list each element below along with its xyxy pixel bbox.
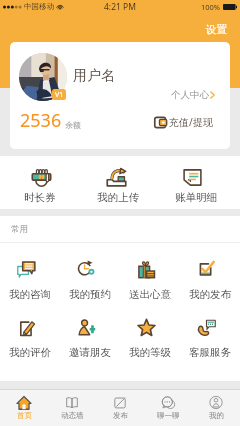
button[interactable]: 我的发布 <box>180 243 240 301</box>
staticText: 我的上传 <box>97 191 139 204</box>
button[interactable]: 设置 <box>204 21 229 38</box>
staticText: 时长券 <box>24 191 56 204</box>
button[interactable]: 充值/提现 <box>152 112 215 132</box>
staticText: 用户名 <box>73 67 115 85</box>
button[interactable]: 账单明细 <box>160 156 240 209</box>
staticText: 4:21 PM <box>104 1 136 13</box>
button[interactable]: 时长券 <box>0 156 80 209</box>
staticText: 送出心意 <box>129 288 171 301</box>
staticText: 聊一聊 <box>157 411 180 420</box>
button[interactable]: 我的咨询 <box>0 243 60 301</box>
staticText: 我的等级 <box>129 346 171 359</box>
staticText: 邀请朋友 <box>69 346 111 359</box>
staticText: 客服服务 <box>189 346 231 359</box>
staticText: 个人中心 <box>171 89 209 101</box>
button[interactable]: 我的上传 <box>80 156 160 209</box>
button[interactable]: 客服服务 <box>180 301 240 381</box>
button[interactable]: 送出心意 <box>120 243 180 301</box>
staticText: 账单明细 <box>175 191 217 204</box>
button[interactable]: 邀请朋友 <box>60 301 120 381</box>
staticText: 设置 <box>206 23 227 36</box>
button[interactable]: 首页 <box>0 390 48 426</box>
staticText: 首页 <box>17 411 32 420</box>
staticText: 充值/提现 <box>169 115 213 129</box>
staticText: 余额 <box>65 120 81 130</box>
button[interactable]: 我的等级 <box>120 301 180 381</box>
staticText: 我的发布 <box>189 288 231 301</box>
button[interactable]: 聊一聊 <box>144 390 192 426</box>
button[interactable]: 发布 <box>96 390 144 426</box>
button[interactable]: 我的 <box>192 390 240 426</box>
staticText: 我的评价 <box>9 346 51 359</box>
staticText: 我的 <box>209 411 224 420</box>
staticText: 我的咨询 <box>9 288 51 301</box>
staticText: 动态墙 <box>61 411 84 420</box>
staticText: 100% <box>201 2 221 12</box>
staticText: V1 <box>55 90 64 100</box>
button[interactable]: 我的预约 <box>60 243 120 301</box>
button[interactable]: 我的评价 <box>0 301 60 381</box>
staticText: 我的预约 <box>69 288 111 301</box>
staticText: 发布 <box>113 411 128 420</box>
staticText: 2536 <box>20 108 62 133</box>
button[interactable]: 动态墙 <box>48 390 96 426</box>
staticText: 中国移动 <box>24 2 54 11</box>
staticText: 常用 <box>11 224 28 235</box>
button[interactable]: 个人中心 <box>169 86 217 104</box>
